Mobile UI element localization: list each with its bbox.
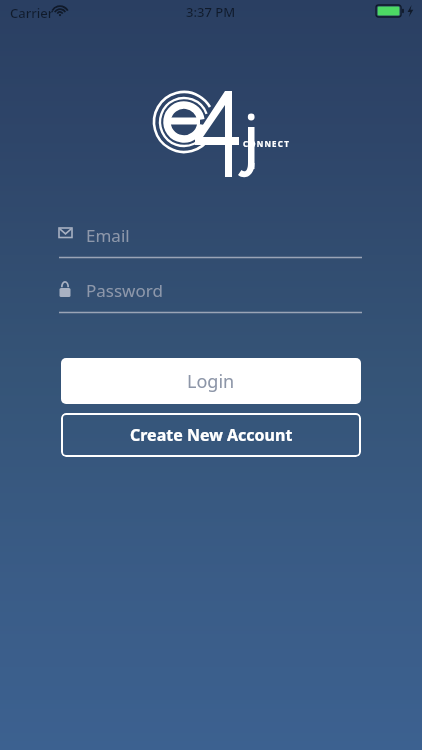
button[interactable]: Create New Account	[61, 413, 361, 457]
staticText: Login	[187, 369, 235, 394]
button[interactable]: Login	[61, 358, 361, 404]
staticText: Password	[86, 279, 163, 302]
button[interactable]: Email	[59, 222, 362, 259]
staticText: Create New Account	[130, 424, 293, 446]
staticText: CONNECT	[243, 138, 290, 149]
staticText: Carrier	[10, 4, 54, 22]
staticText: Email	[86, 224, 130, 247]
button[interactable]: Password	[59, 277, 362, 314]
staticText: 3:37 PM	[186, 3, 236, 21]
